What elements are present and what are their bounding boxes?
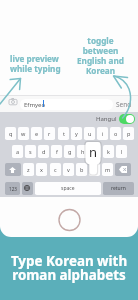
staticText: Send [116,100,132,109]
staticText: a [16,148,20,155]
staticText: y [75,130,78,137]
staticText: 123 [9,186,17,192]
staticText: i [102,130,104,137]
button[interactable]: k [103,145,114,158]
staticText: x [40,166,43,173]
staticText: b [80,166,84,173]
staticText: v [67,166,70,173]
button[interactable] [115,163,131,176]
staticText: space [61,185,75,192]
button[interactable]: z [23,163,34,176]
staticText: j [95,148,97,155]
button[interactable]: Hangul toggle [119,114,135,124]
staticText: o [114,130,118,137]
button[interactable]: space [35,182,101,195]
staticText: toggle between English and Korean [70,35,131,76]
button[interactable]: j [90,145,101,158]
staticText: g [68,148,72,155]
button[interactable]: t [58,127,69,140]
button[interactable]: d [38,145,49,158]
button[interactable]: a [12,145,23,158]
staticText: c [54,166,57,173]
staticText: e [35,130,39,137]
button[interactable]: f [51,145,62,158]
staticText: Type Korean with roman alphabets [0,252,138,284]
staticText: s [29,148,32,155]
button[interactable]: Camera [9,98,17,105]
button[interactable]: 123 [5,182,20,195]
staticText: return [111,185,126,192]
button[interactable]: u [84,127,95,140]
button[interactable]: Hangul [96,115,117,123]
staticText: f [56,148,58,155]
button[interactable]: Efmyeo [20,99,113,110]
staticText: z [27,166,30,173]
button[interactable]: y [71,127,82,140]
button[interactable]: n [89,163,100,176]
button[interactable]: x [36,163,47,176]
button[interactable]: Send [116,100,132,109]
button[interactable]: s [25,145,36,158]
button[interactable] [5,163,21,176]
button[interactable]: g [64,145,75,158]
staticText: l [121,148,123,155]
staticText: Efmyeo [24,101,46,109]
button[interactable]: e [31,127,42,140]
button[interactable]: i [97,127,108,140]
button[interactable]: v [63,163,74,176]
staticText: n [89,143,98,161]
staticText: k [107,148,110,155]
button[interactable] [22,182,33,195]
staticText: live preview while typing [10,53,61,74]
staticText: Hangul [96,115,117,123]
button[interactable]: r [44,127,55,140]
staticText: w [21,130,26,137]
staticText: u [88,130,92,137]
button[interactable]: b [76,163,87,176]
button[interactable]: o [110,127,121,140]
button[interactable]: w [18,127,29,140]
staticText: h [81,148,85,155]
staticText: q [9,130,13,137]
button[interactable]: p [123,127,134,140]
button[interactable]: return [103,182,134,195]
staticText: r [48,130,51,137]
staticText: p [127,130,131,137]
button[interactable]: m [102,163,113,176]
staticText: d [42,148,46,155]
button[interactable]: h [77,145,88,158]
button[interactable]: c [50,163,61,176]
button[interactable]: l [116,145,127,158]
staticText: t [63,130,65,137]
button[interactable]: q [5,127,16,140]
staticText: m [105,166,111,173]
